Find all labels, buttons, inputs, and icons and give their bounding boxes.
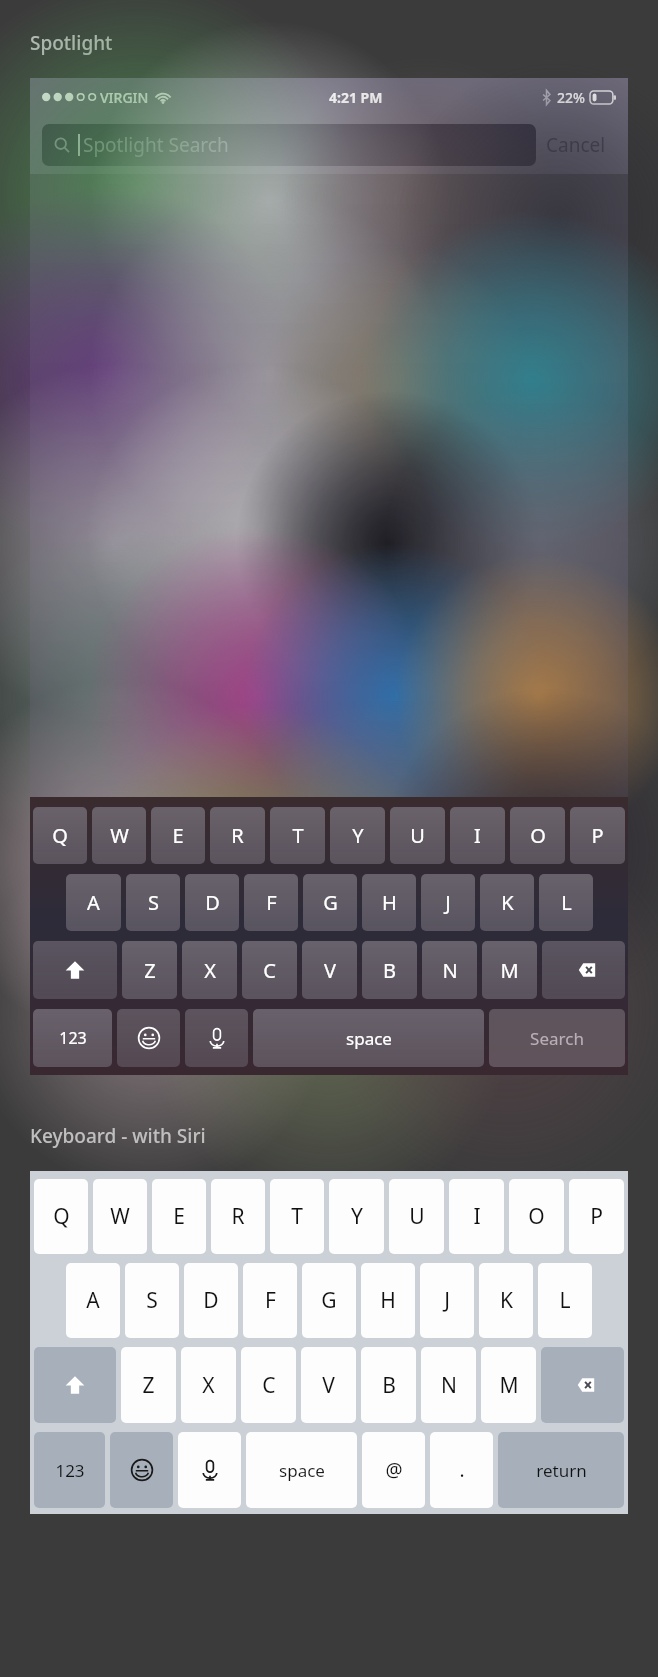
button[interactable]: V bbox=[302, 941, 357, 999]
button[interactable]: R bbox=[210, 807, 265, 864]
button[interactable]: L bbox=[539, 874, 593, 931]
staticText: I bbox=[474, 822, 481, 849]
button[interactable]: G bbox=[303, 874, 357, 931]
staticText: X bbox=[204, 957, 216, 984]
button[interactable]: S bbox=[125, 1263, 179, 1338]
button[interactable]: B bbox=[362, 941, 417, 999]
button[interactable]: 123 bbox=[33, 1009, 112, 1067]
staticText: W bbox=[110, 1202, 130, 1231]
button[interactable]: U bbox=[389, 1179, 444, 1254]
staticText: C bbox=[262, 1371, 276, 1400]
button[interactable]: D bbox=[184, 1263, 238, 1338]
button[interactable]: E bbox=[152, 1179, 206, 1254]
staticText: E bbox=[172, 822, 184, 849]
button[interactable]: N bbox=[421, 1347, 476, 1423]
button[interactable]: H bbox=[362, 874, 416, 931]
button[interactable]: N bbox=[422, 941, 477, 999]
staticText: 123 bbox=[55, 1459, 85, 1482]
staticText: C bbox=[263, 957, 276, 984]
staticText: D bbox=[205, 889, 220, 916]
button[interactable]: C bbox=[242, 941, 297, 999]
button[interactable]: space bbox=[246, 1432, 357, 1508]
button[interactable]: . bbox=[430, 1432, 493, 1508]
staticText: Q bbox=[52, 822, 68, 849]
button[interactable]: F bbox=[244, 874, 298, 931]
button[interactable]: X bbox=[182, 941, 237, 999]
staticText: A bbox=[87, 889, 100, 916]
staticText: G bbox=[323, 889, 338, 916]
button[interactable]: D bbox=[185, 874, 239, 931]
staticText: R bbox=[231, 822, 244, 849]
button[interactable]: W bbox=[93, 1179, 147, 1254]
staticText: 22% bbox=[557, 88, 585, 107]
button[interactable]: Delete bbox=[542, 941, 625, 999]
button[interactable]: S bbox=[126, 874, 180, 931]
staticText: G bbox=[321, 1286, 337, 1315]
button[interactable]: E bbox=[151, 807, 205, 864]
button[interactable]: Dictate bbox=[185, 1009, 248, 1067]
button[interactable]: M bbox=[482, 941, 537, 999]
button[interactable]: Z bbox=[121, 1347, 176, 1423]
button[interactable]: J bbox=[420, 1263, 474, 1338]
button[interactable]: P bbox=[569, 1179, 624, 1254]
button[interactable]: I bbox=[449, 1179, 504, 1254]
button[interactable]: Cancel bbox=[536, 126, 616, 164]
staticText: H bbox=[382, 889, 397, 916]
button[interactable]: Y bbox=[330, 807, 385, 864]
button[interactable]: B bbox=[361, 1347, 416, 1423]
staticText: T bbox=[291, 1202, 303, 1231]
button[interactable]: G bbox=[302, 1263, 356, 1338]
staticText: K bbox=[500, 1286, 513, 1315]
button[interactable]: Z bbox=[122, 941, 177, 999]
button[interactable]: Search bbox=[489, 1009, 625, 1067]
button[interactable]: Shift bbox=[34, 1347, 116, 1423]
button[interactable]: V bbox=[301, 1347, 356, 1423]
button[interactable]: Spotlight Search bbox=[42, 124, 536, 166]
button[interactable]: Y bbox=[329, 1179, 384, 1254]
staticText: Search bbox=[530, 1027, 584, 1050]
button[interactable]: R bbox=[211, 1179, 265, 1254]
button[interactable]: A bbox=[66, 1263, 120, 1338]
button[interactable]: Dictate bbox=[178, 1432, 241, 1508]
button[interactable]: @ bbox=[362, 1432, 425, 1508]
button[interactable]: I bbox=[450, 807, 505, 864]
staticText: F bbox=[265, 1286, 276, 1315]
button[interactable]: T bbox=[270, 807, 325, 864]
button[interactable]: space bbox=[253, 1009, 484, 1067]
button[interactable]: F bbox=[243, 1263, 297, 1338]
button[interactable]: 123 bbox=[34, 1432, 105, 1508]
button[interactable]: X bbox=[181, 1347, 236, 1423]
button[interactable]: M bbox=[481, 1347, 536, 1423]
button[interactable]: A bbox=[66, 874, 121, 931]
button[interactable]: Emoji bbox=[110, 1432, 173, 1508]
button[interactable]: return bbox=[498, 1432, 624, 1508]
button[interactable]: T bbox=[270, 1179, 324, 1254]
staticText: V bbox=[322, 1371, 335, 1400]
button[interactable]: K bbox=[480, 874, 534, 931]
staticText: K bbox=[501, 889, 514, 916]
staticText: @ bbox=[385, 1457, 403, 1483]
button[interactable]: H bbox=[361, 1263, 415, 1338]
staticText: O bbox=[530, 822, 546, 849]
button[interactable]: Shift bbox=[33, 941, 117, 999]
button[interactable]: O bbox=[510, 807, 565, 864]
staticText: Z bbox=[142, 1371, 155, 1400]
button[interactable]: Q bbox=[34, 1179, 88, 1254]
button[interactable]: C bbox=[241, 1347, 296, 1423]
button[interactable]: L bbox=[538, 1263, 592, 1338]
staticText: B bbox=[383, 957, 396, 984]
button[interactable]: Emoji bbox=[117, 1009, 180, 1067]
staticText: E bbox=[173, 1202, 185, 1231]
button[interactable]: Delete bbox=[541, 1347, 624, 1423]
button[interactable]: K bbox=[479, 1263, 533, 1338]
button[interactable]: J bbox=[421, 874, 475, 931]
button[interactable]: O bbox=[509, 1179, 564, 1254]
button[interactable]: Q bbox=[33, 807, 87, 864]
staticText: Y bbox=[352, 822, 364, 849]
button[interactable]: W bbox=[92, 807, 146, 864]
staticText: S bbox=[146, 1286, 158, 1315]
staticText: U bbox=[409, 1202, 425, 1231]
staticText: O bbox=[528, 1202, 545, 1231]
button[interactable]: U bbox=[390, 807, 445, 864]
button[interactable]: P bbox=[570, 807, 625, 864]
